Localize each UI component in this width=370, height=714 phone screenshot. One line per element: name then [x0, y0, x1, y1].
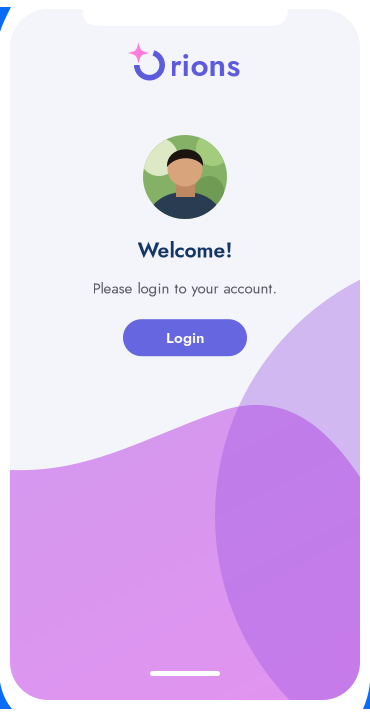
- staticText: Welcome!: [137, 235, 232, 265]
- button[interactable]: Login: [123, 319, 247, 356]
- staticText: Login: [166, 327, 204, 349]
- staticText: Please login to your account.: [92, 277, 277, 299]
- staticText: rions: [169, 42, 240, 88]
